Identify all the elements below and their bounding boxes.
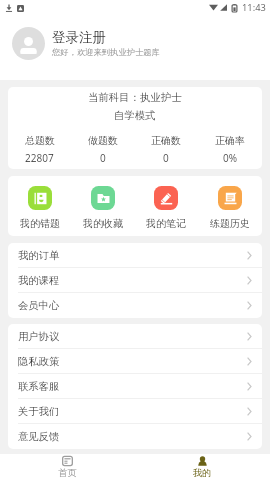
button[interactable]: 我的 (135, 454, 270, 480)
staticText: 我的课程 (18, 274, 60, 287)
button[interactable]: 会员中心 (8, 293, 262, 318)
other: 首页 (62, 456, 73, 466)
staticText: 联系客服 (18, 380, 60, 393)
staticText: 0% (223, 151, 238, 165)
button[interactable]: 练题历史 (198, 186, 262, 229)
button[interactable]: 登录注册 (0, 15, 270, 80)
staticText: 总题数 (25, 134, 55, 147)
button[interactable]: 我的错题 (8, 186, 71, 229)
staticText: 0 (100, 151, 106, 165)
staticText: 用户协议 (18, 330, 60, 343)
staticText: 11:43 (242, 1, 266, 14)
button[interactable]: 用户协议 (8, 324, 262, 349)
staticText: 我的错题 (20, 217, 60, 229)
staticText: 我的收藏 (83, 217, 123, 229)
button[interactable]: 首页 (0, 454, 135, 480)
button[interactable]: 我的收藏 (71, 186, 134, 229)
button[interactable]: 我的订单 (8, 243, 262, 268)
staticText: 我的订单 (18, 249, 60, 262)
staticText: 正确数 (151, 134, 181, 147)
staticText: 做题数 (88, 134, 118, 147)
staticText: 隐私政策 (18, 355, 60, 368)
staticText: 练题历史 (210, 217, 250, 229)
button[interactable]: 我的课程 (8, 268, 262, 293)
staticText: 关于我们 (18, 405, 60, 418)
staticText: 自学模式 (114, 109, 156, 122)
staticText: 当前科目：执业护士 (88, 91, 182, 104)
staticText: 我的笔记 (146, 217, 186, 229)
staticText: 您好，欢迎来到执业护士题库 (52, 47, 160, 57)
button[interactable]: 联系客服 (8, 374, 262, 399)
staticText: 我的 (193, 467, 212, 479)
staticText: 意见反馈 (18, 430, 60, 443)
staticText: 首页 (58, 467, 77, 479)
staticText: 会员中心 (18, 299, 60, 312)
staticText: 0 (163, 151, 169, 165)
other: 我的 (197, 456, 208, 466)
button[interactable]: 关于我们 (8, 399, 262, 424)
button[interactable]: 隐私政策 (8, 349, 262, 374)
button[interactable]: 我的笔记 (134, 186, 198, 229)
staticText: 22807 (25, 151, 54, 165)
button[interactable]: 意见反馈 (8, 424, 262, 449)
staticText: 正确率 (215, 134, 245, 147)
staticText: 登录注册 (52, 29, 106, 46)
